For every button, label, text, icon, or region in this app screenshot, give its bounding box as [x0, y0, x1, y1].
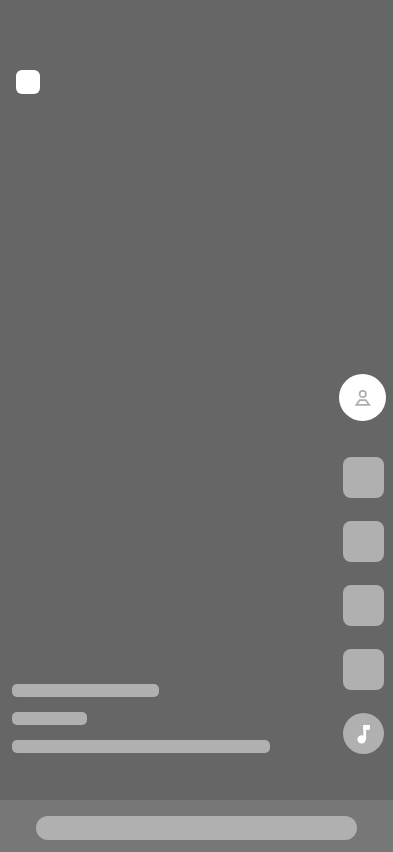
button[interactable]: Comment [343, 521, 384, 562]
button[interactable]: Navigation bar [36, 816, 357, 840]
button[interactable]: Author profile [339, 374, 386, 421]
button[interactable]: Back [16, 70, 40, 94]
button[interactable]: Share [343, 649, 384, 690]
button[interactable]: Sound [343, 713, 384, 754]
button[interactable]: Bookmark [343, 585, 384, 626]
button[interactable]: Like [343, 457, 384, 498]
